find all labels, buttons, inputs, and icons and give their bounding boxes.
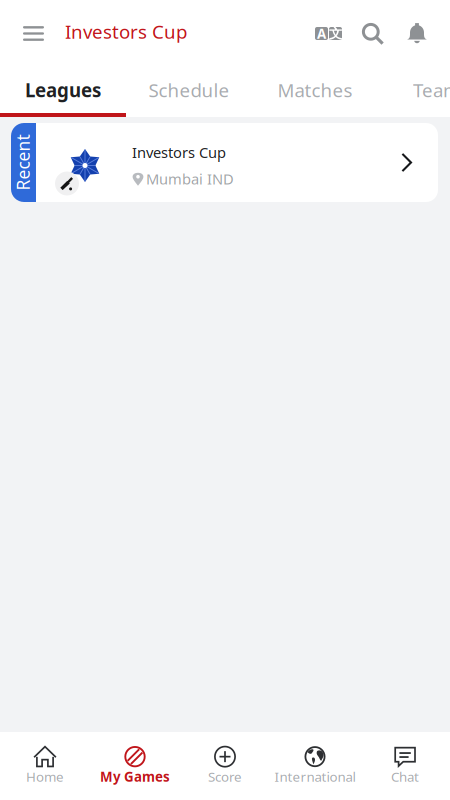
staticText: Investors Cup [65, 19, 187, 44]
staticText: Home [26, 768, 64, 785]
button[interactable]: International [270, 732, 360, 800]
button[interactable]: Home [0, 732, 90, 800]
staticText: Teams [413, 78, 450, 102]
button[interactable]: Translate [307, 13, 350, 54]
button[interactable]: Investors Cup [36, 123, 438, 202]
button[interactable]: Teams [378, 67, 450, 117]
button[interactable]: Notifications [395, 11, 442, 55]
staticText: Leagues [25, 78, 101, 102]
staticText: My Games [100, 768, 170, 785]
button[interactable]: Schedule [126, 67, 252, 117]
staticText: Recent [0, 151, 51, 174]
staticText: Matches [277, 78, 352, 102]
button[interactable]: Leagues [0, 67, 126, 117]
button[interactable]: Chat [360, 732, 450, 800]
button[interactable]: Search [350, 12, 395, 55]
button[interactable]: Menu [8, 4, 53, 63]
staticText: Chat [391, 768, 419, 785]
staticText: A [317, 25, 326, 42]
button[interactable]: Matches [252, 67, 378, 117]
staticText: 文 [329, 25, 342, 42]
staticText: International [274, 768, 355, 785]
staticText: Investors Cup [132, 142, 226, 162]
staticText: Score [208, 768, 242, 785]
staticText: Schedule [148, 78, 229, 102]
staticText: Mumbai IND [146, 169, 234, 188]
button[interactable]: My Games [90, 732, 180, 800]
button[interactable]: Score [180, 732, 270, 800]
